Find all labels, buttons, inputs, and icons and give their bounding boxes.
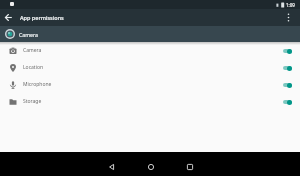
button[interactable] bbox=[280, 81, 292, 89]
button[interactable]: Location bbox=[0, 59, 300, 76]
staticText: Camera bbox=[23, 47, 42, 54]
staticText: Camera bbox=[19, 31, 38, 38]
button[interactable] bbox=[280, 9, 297, 26]
button[interactable] bbox=[108, 163, 115, 170]
button[interactable] bbox=[147, 163, 154, 170]
button[interactable]: Microphone bbox=[0, 76, 300, 93]
staticText: Storage bbox=[23, 98, 42, 105]
button[interactable] bbox=[186, 163, 193, 170]
button[interactable]: Storage bbox=[0, 93, 300, 110]
staticText: App permissions bbox=[20, 14, 64, 21]
button[interactable] bbox=[280, 47, 292, 55]
button[interactable]: Camera bbox=[0, 26, 300, 42]
button[interactable] bbox=[280, 98, 292, 106]
staticText: 1:09 bbox=[286, 2, 295, 8]
staticText: Location bbox=[23, 64, 44, 71]
staticText: Microphone bbox=[23, 81, 52, 88]
button[interactable]: Camera bbox=[0, 42, 300, 59]
button[interactable] bbox=[0, 9, 17, 26]
button[interactable] bbox=[280, 64, 292, 72]
